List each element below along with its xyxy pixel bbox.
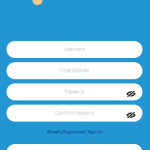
button[interactable]: Confirm Password [6,105,142,122]
staticText: Username [64,47,84,52]
staticText: Confirm Password [55,110,94,116]
staticText: Password [64,89,84,94]
staticText: Email Address [60,68,89,73]
button[interactable]: Password [6,83,142,100]
button[interactable]: Email Address [6,62,142,79]
button[interactable] [6,144,142,150]
button[interactable]: Already Registered? Sign In [0,127,150,136]
button[interactable]: Username [6,41,142,58]
staticText: Already Registered? Sign In [47,129,103,134]
